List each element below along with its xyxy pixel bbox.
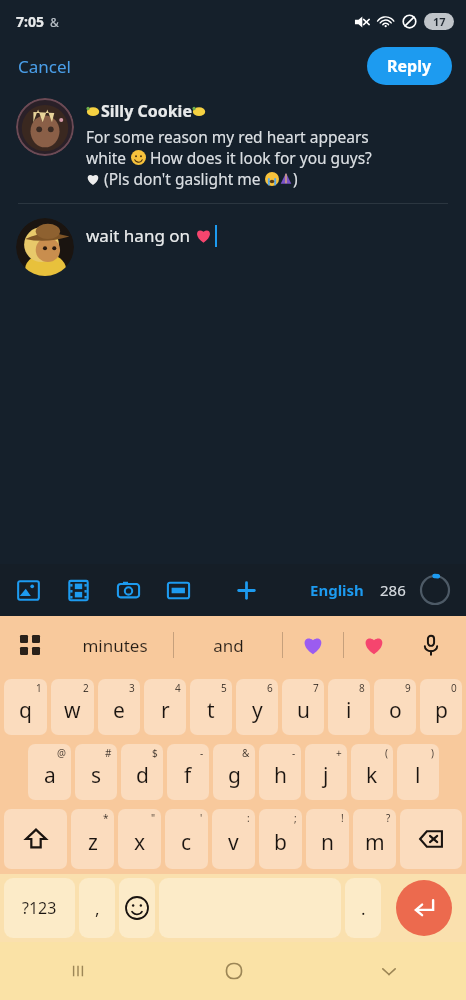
staticText: .: [361, 897, 366, 920]
button[interactable]: wait hang on: [86, 224, 450, 247]
button[interactable]: and: [174, 616, 282, 674]
button[interactable]: 7: [282, 679, 324, 735]
button[interactable]: +: [305, 744, 347, 800]
staticText: j: [323, 761, 329, 790]
staticText: and: [213, 634, 244, 657]
staticText: (Pls don't gaslight me: [100, 168, 265, 189]
button[interactable]: 2: [51, 679, 94, 735]
staticText: v: [228, 828, 239, 857]
button[interactable]: 6: [236, 679, 278, 735]
button[interactable]: Characters remaining: [418, 573, 452, 607]
staticText: t: [207, 696, 215, 725]
staticText: b: [274, 828, 287, 857]
staticText: Cancel: [18, 55, 71, 78]
staticText: -: [292, 746, 296, 760]
staticText: (: [385, 746, 388, 760]
button[interactable]: 9: [374, 679, 416, 735]
staticText: n: [321, 828, 334, 857]
staticText: English: [310, 580, 364, 600]
button[interactable]: Backspace: [400, 809, 462, 869]
button[interactable]: English: [306, 576, 368, 604]
staticText: :: [247, 811, 250, 825]
button[interactable]: ?: [353, 809, 396, 869]
button[interactable]: 4: [144, 679, 186, 735]
button[interactable]: Purple heart: [283, 616, 343, 674]
button[interactable]: 5: [190, 679, 232, 735]
button[interactable]: @: [28, 744, 71, 800]
staticText: q: [19, 696, 32, 725]
staticText: Silly Cookie: [101, 100, 192, 122]
button[interactable]: ,: [79, 878, 115, 938]
button[interactable]: *: [71, 809, 114, 869]
staticText: How does it look for you guys?: [146, 147, 372, 168]
staticText: 8: [359, 681, 365, 695]
staticText: m: [365, 828, 385, 857]
button[interactable]: Recents: [0, 942, 156, 1000]
button[interactable]: Keyboard menu: [10, 625, 50, 665]
button[interactable]: Reply: [367, 47, 452, 85]
button[interactable]: #: [75, 744, 117, 800]
button[interactable]: :: [212, 809, 255, 869]
staticText: z: [88, 828, 98, 857]
staticText: 7:05: [16, 12, 44, 31]
button[interactable]: ": [118, 809, 161, 869]
staticText: 7: [313, 681, 319, 695]
staticText: 2: [83, 681, 89, 695]
staticText: ?: [386, 811, 391, 825]
button[interactable]: 1: [4, 679, 47, 735]
button[interactable]: Hide keyboard: [311, 942, 466, 1000]
staticText: 9: [405, 681, 411, 695]
staticText: r: [161, 696, 170, 725]
button[interactable]: [16, 98, 74, 156]
button[interactable]: Add video: [64, 576, 92, 604]
button[interactable]: Camera: [114, 576, 142, 604]
button[interactable]: Add photo: [14, 576, 42, 604]
staticText: o: [389, 696, 402, 725]
staticText: u: [297, 696, 310, 725]
button[interactable]: !: [306, 809, 349, 869]
staticText: ): [431, 746, 434, 760]
staticText: 3: [129, 681, 135, 695]
button[interactable]: (: [351, 744, 393, 800]
staticText: 286: [380, 580, 406, 600]
button[interactable]: -: [167, 744, 209, 800]
button[interactable]: 8: [328, 679, 370, 735]
staticText: s: [91, 761, 102, 790]
button[interactable]: Voice input: [404, 616, 458, 674]
button[interactable]: Emoji: [119, 878, 155, 938]
staticText: ;: [294, 811, 297, 825]
button[interactable]: 3: [98, 679, 140, 735]
button[interactable]: Home: [156, 942, 311, 1000]
button[interactable]: ': [165, 809, 208, 869]
button[interactable]: Red heart: [344, 616, 404, 674]
button[interactable]: minutes: [56, 616, 173, 674]
button[interactable]: ;: [259, 809, 302, 869]
staticText: i: [346, 696, 352, 725]
button[interactable]: ): [397, 744, 439, 800]
button[interactable]: Add GIF: [164, 576, 192, 604]
staticText: @: [57, 746, 66, 760]
staticText: f: [184, 761, 192, 790]
button[interactable]: Enter: [396, 880, 452, 936]
button[interactable]: [16, 218, 74, 276]
staticText: ): [293, 168, 298, 189]
button[interactable]: 0: [420, 679, 462, 735]
staticText: 5: [221, 681, 227, 695]
staticText: y: [252, 696, 263, 725]
staticText: x: [134, 828, 146, 857]
staticText: $: [152, 746, 158, 760]
staticText: g: [228, 761, 241, 790]
button[interactable]: &: [213, 744, 255, 800]
staticText: 4: [175, 681, 181, 695]
staticText: wait hang on: [86, 224, 195, 247]
button[interactable]: ?123: [4, 878, 75, 938]
button[interactable]: Add poll: [232, 576, 260, 604]
staticText: !: [341, 811, 344, 825]
button[interactable]: $: [121, 744, 163, 800]
button[interactable]: Cancel: [0, 49, 89, 84]
staticText: 6: [267, 681, 273, 695]
button[interactable]: -: [259, 744, 301, 800]
button[interactable]: .: [345, 878, 381, 938]
button[interactable]: Shift: [4, 809, 67, 869]
